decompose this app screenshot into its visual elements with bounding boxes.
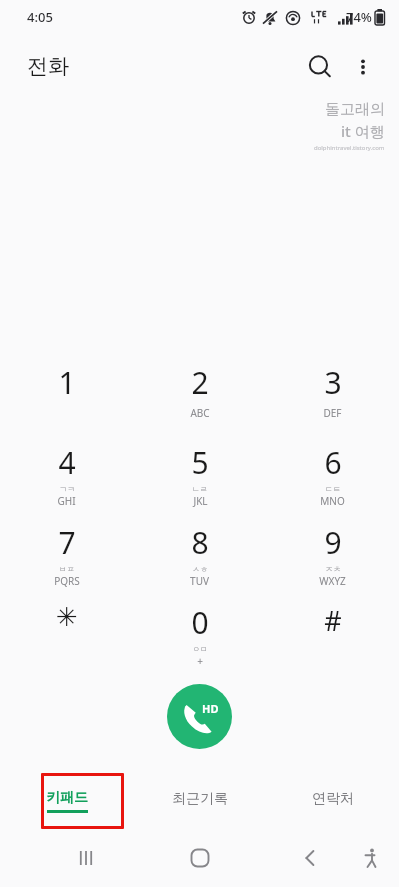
button[interactable]: 6 (266, 429, 399, 509)
staticText: ㄷㅌ (325, 484, 341, 494)
button[interactable]: 3 (266, 349, 399, 429)
staticText: GHI (57, 494, 76, 508)
button[interactable]: 5 (133, 429, 266, 509)
button[interactable]: 7 (0, 509, 133, 589)
staticText: 전화 (27, 53, 69, 79)
staticText: 8 (191, 522, 209, 563)
staticText: ㅅㅎ (192, 564, 208, 574)
staticText: 키패드 (46, 789, 88, 807)
staticText: 74% (346, 8, 372, 26)
button[interactable]: 접근성 (347, 834, 395, 882)
staticText: WXYZ (319, 574, 346, 588)
button[interactable]: # (266, 589, 399, 669)
button[interactable]: 홈 (176, 834, 224, 882)
staticText: 돌고래의 (325, 100, 385, 119)
button[interactable]: 4 (0, 429, 133, 509)
button[interactable]: 통화 (167, 684, 232, 749)
staticText: ㄴㄹ (192, 484, 208, 494)
staticText: # (324, 602, 342, 639)
button[interactable]: 더보기 (341, 45, 385, 89)
staticText: 7 (58, 522, 76, 563)
staticText: 1 (58, 362, 76, 403)
staticText: HD (202, 701, 219, 716)
button[interactable]: 1 (0, 349, 133, 429)
staticText: 최근기록 (172, 790, 228, 808)
button[interactable]: 0 (133, 589, 266, 669)
button[interactable]: 2 (133, 349, 266, 429)
button[interactable]: 연락처 (266, 773, 399, 829)
button[interactable]: 최근 앱 (62, 834, 110, 882)
staticText: TUV (190, 574, 209, 588)
staticText: 연락처 (312, 790, 354, 808)
button[interactable]: 8 (133, 509, 266, 589)
staticText: 9 (324, 522, 342, 563)
staticText: ㄱㅋ (59, 484, 75, 494)
staticText: DEF (323, 406, 342, 420)
staticText: ✳ (56, 602, 78, 632)
staticText: dolphintravel.tistory.com (314, 144, 385, 152)
button[interactable]: 뒤로 (287, 834, 335, 882)
staticText: PQRS (54, 574, 80, 588)
staticText: 3 (324, 362, 342, 403)
button[interactable]: 9 (266, 509, 399, 589)
staticText: JKL (193, 494, 208, 508)
staticText: ABC (190, 406, 210, 420)
staticText: + (197, 654, 203, 668)
button[interactable]: 최근기록 (133, 773, 266, 829)
staticText: 5 (191, 442, 209, 483)
button[interactable]: 키패드 (0, 773, 133, 829)
staticText: MNO (320, 494, 345, 508)
staticText: ㅈㅊ (325, 564, 341, 574)
staticText: 6 (324, 442, 342, 483)
staticText: 2 (191, 362, 209, 403)
staticText: 0 (191, 602, 209, 643)
staticText: ㅂㅍ (59, 564, 75, 574)
staticText: it 여행 (341, 121, 385, 141)
staticText: 4:05 (27, 8, 53, 26)
staticText: ㅇㅁ (192, 644, 208, 654)
button[interactable]: 검색 (298, 45, 342, 89)
staticText: 4 (58, 442, 76, 483)
button[interactable]: ✳ (0, 589, 133, 669)
